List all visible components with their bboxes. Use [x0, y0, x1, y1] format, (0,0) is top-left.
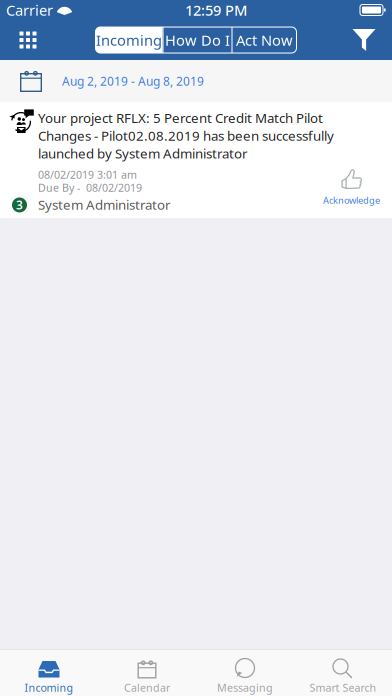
- staticText: Incoming: [24, 680, 73, 695]
- staticText: How Do I: [165, 30, 230, 50]
- button[interactable]: Incoming: [95, 27, 162, 53]
- staticText: Your project RFLX: 5 Percent Credit Matc…: [38, 109, 334, 162]
- button[interactable]: Acknowledge: [323, 102, 392, 206]
- staticText: Aug 2, 2019 - Aug 8, 2019: [62, 73, 204, 89]
- staticText: Messaging: [217, 680, 273, 695]
- button[interactable]: Apps: [6, 20, 50, 60]
- button[interactable]: 3: [0, 102, 392, 218]
- staticText: 12:59 PM: [185, 0, 247, 20]
- staticText: 3: [16, 197, 23, 213]
- staticText: System Administrator: [38, 196, 171, 213]
- button[interactable]: Smart Search: [294, 649, 392, 696]
- button[interactable]: Incoming: [0, 649, 98, 696]
- staticText: 08/02/2019 3:01 am: [38, 167, 137, 182]
- button[interactable]: Messaging: [196, 649, 294, 696]
- button[interactable]: Aug 2, 2019 - Aug 8, 2019: [0, 60, 392, 102]
- staticText: Acknowledge: [323, 194, 380, 206]
- button[interactable]: How Do I: [163, 27, 231, 53]
- staticText: Incoming: [96, 30, 162, 50]
- staticText: Calendar: [124, 680, 170, 695]
- button[interactable]: Act Now: [232, 27, 296, 53]
- staticText: Carrier: [6, 0, 53, 20]
- staticText: Due By - 08/02/2019: [38, 180, 142, 195]
- button[interactable]: Calendar: [98, 649, 196, 696]
- staticText: Act Now: [236, 30, 293, 50]
- button[interactable]: Filter: [342, 20, 386, 60]
- staticText: Smart Search: [309, 680, 376, 695]
